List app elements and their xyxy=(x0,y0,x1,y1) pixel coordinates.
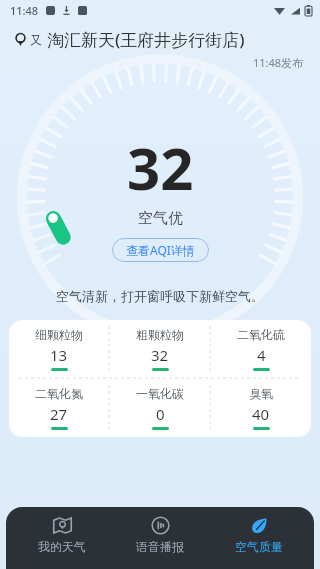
staticText: 又 xyxy=(30,32,42,47)
staticText: 11:48发布 xyxy=(253,55,304,70)
staticText: 一氧化碳 xyxy=(136,386,184,401)
other: Location xyxy=(14,33,27,46)
staticText: 细颗粒物 xyxy=(35,327,83,342)
staticText: 4 xyxy=(257,345,266,365)
staticText: 32 xyxy=(127,128,194,207)
button[interactable]: 二氧化氮 xyxy=(9,379,109,437)
button[interactable]: 细颗粒物 xyxy=(9,320,109,378)
staticText: 空气质量 xyxy=(235,539,283,554)
staticText: 二氧化氮 xyxy=(35,386,83,401)
staticText: 二氧化硫 xyxy=(237,327,285,342)
staticText: 查看AQI详情 xyxy=(126,242,195,258)
button[interactable]: 语音播报 xyxy=(117,515,203,554)
staticText: 13 xyxy=(50,345,68,365)
staticText: 40 xyxy=(252,404,270,424)
staticText: 空气优 xyxy=(138,209,183,228)
button[interactable]: 查看AQI详情 xyxy=(112,238,209,262)
button[interactable]: 空气质量 xyxy=(216,515,302,554)
staticText: 空气清新，打开窗呼吸下新鲜空气。 xyxy=(56,288,264,304)
staticText: 语音播报 xyxy=(136,539,184,554)
staticText: 粗颗粒物 xyxy=(136,327,184,342)
button[interactable]: 一氧化碳 xyxy=(110,379,210,437)
staticText: 32 xyxy=(151,345,169,365)
button[interactable]: 粗颗粒物 xyxy=(110,320,210,378)
staticText: 臭氧 xyxy=(249,386,273,401)
staticText: 淘汇新天(王府井步行街店) xyxy=(47,28,245,51)
staticText: 11:48 xyxy=(10,3,39,18)
staticText: 27 xyxy=(50,404,68,424)
staticText: 我的天气 xyxy=(38,539,86,554)
button[interactable]: 臭氧 xyxy=(211,379,311,437)
button[interactable]: 我的天气 xyxy=(19,515,105,554)
staticText: 0 xyxy=(156,404,165,424)
button[interactable]: 二氧化硫 xyxy=(211,320,311,378)
